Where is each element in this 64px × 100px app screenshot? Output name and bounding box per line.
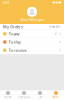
staticText: To receive xyxy=(9,47,27,53)
button[interactable]: To ship xyxy=(0,38,64,46)
staticText: Category xyxy=(18,95,30,99)
staticText: To pay xyxy=(9,31,20,36)
staticText: View all xyxy=(49,25,59,28)
button[interactable]: Cart xyxy=(32,90,48,100)
staticText: Home xyxy=(4,95,12,99)
staticText: Cart xyxy=(37,95,42,99)
staticText: 9:41 xyxy=(2,0,9,5)
button[interactable]: My Orders xyxy=(0,24,64,29)
staticText: Alex Morgan xyxy=(20,17,43,22)
staticText: To ship xyxy=(9,39,21,45)
staticText: My Orders xyxy=(3,24,23,29)
button[interactable]: Home xyxy=(0,90,16,100)
button[interactable]: Category xyxy=(16,90,32,100)
staticText: 2 xyxy=(55,32,57,35)
button[interactable]: To pay xyxy=(0,30,64,38)
button[interactable]: To receive xyxy=(0,46,64,54)
staticText: Mine xyxy=(52,95,59,99)
button[interactable]: Mine xyxy=(48,90,64,100)
